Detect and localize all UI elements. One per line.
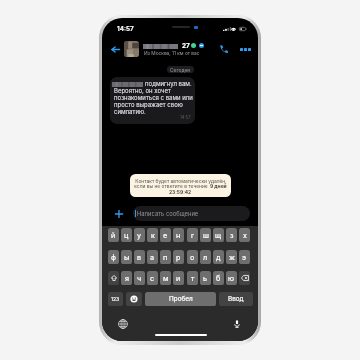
staticText: ш bbox=[203, 231, 209, 240]
button[interactable]: Ввод bbox=[219, 292, 253, 306]
button[interactable]: я bbox=[121, 271, 132, 285]
button[interactable]: и bbox=[173, 271, 184, 285]
button[interactable]: Add attachment bbox=[114, 209, 124, 219]
button[interactable]: р bbox=[173, 250, 184, 264]
staticText: е bbox=[163, 231, 168, 240]
button[interactable]: х bbox=[239, 228, 250, 242]
button[interactable]: г bbox=[187, 228, 198, 242]
button[interactable]: More options bbox=[238, 42, 252, 56]
staticText: 123 bbox=[111, 296, 120, 302]
staticText: э bbox=[242, 253, 247, 262]
button[interactable]: ш bbox=[200, 228, 211, 242]
staticText: ю bbox=[228, 274, 235, 283]
button[interactable]: л bbox=[200, 250, 211, 264]
staticText: Пробел bbox=[169, 295, 193, 303]
staticText: з bbox=[230, 231, 234, 240]
staticText: Контакт будет автоматически удалён, bbox=[135, 178, 227, 184]
button[interactable]: Emoji bbox=[126, 292, 142, 306]
button[interactable]: Shift bbox=[108, 271, 119, 285]
button[interactable]: ж bbox=[226, 250, 237, 264]
button[interactable]: Profile photo bbox=[124, 41, 139, 57]
staticText: ь bbox=[203, 274, 208, 283]
staticText: а bbox=[150, 253, 155, 262]
button[interactable]: н bbox=[173, 228, 184, 242]
staticText: х bbox=[243, 231, 247, 240]
button[interactable]: 123 bbox=[108, 292, 123, 306]
staticText: 14:57 bbox=[180, 115, 191, 120]
button[interactable]: ы bbox=[121, 250, 132, 264]
button[interactable]: Сегодня bbox=[167, 66, 194, 73]
staticText: г bbox=[191, 231, 195, 240]
staticText: Ввод bbox=[228, 295, 244, 303]
button[interactable]: м bbox=[160, 271, 171, 285]
button[interactable]: Call bbox=[217, 42, 231, 56]
button[interactable]: ч bbox=[134, 271, 145, 285]
staticText: если вы не ответите в течение bbox=[134, 183, 210, 189]
staticText: ч bbox=[137, 274, 142, 283]
staticText: Вероятно, он хочет познакомиться с вами … bbox=[114, 87, 193, 115]
staticText: ц bbox=[124, 231, 129, 240]
button[interactable]: Voice input bbox=[232, 319, 242, 329]
staticText: б bbox=[216, 274, 221, 283]
button[interactable]: з bbox=[226, 228, 237, 242]
staticText: щ bbox=[215, 231, 222, 240]
button[interactable]: щ bbox=[213, 228, 224, 242]
staticText: т bbox=[191, 274, 195, 283]
staticText: д bbox=[216, 253, 221, 262]
button[interactable]: с bbox=[147, 271, 158, 285]
staticText: л bbox=[203, 253, 208, 262]
staticText: й bbox=[111, 231, 116, 240]
button[interactable]: д bbox=[213, 250, 224, 264]
staticText: в bbox=[137, 253, 142, 262]
staticText: я bbox=[125, 274, 129, 283]
staticText: к bbox=[151, 231, 155, 240]
staticText: Написать сообщение bbox=[137, 210, 199, 217]
staticText: 14:57 bbox=[117, 25, 134, 33]
button[interactable]: й bbox=[108, 228, 119, 242]
button[interactable]: ц bbox=[121, 228, 132, 242]
button[interactable]: у bbox=[134, 228, 145, 242]
staticText: у bbox=[137, 231, 142, 240]
button[interactable]: б bbox=[213, 271, 224, 285]
staticText: 27 bbox=[182, 42, 190, 50]
button[interactable]: а bbox=[147, 250, 158, 264]
button[interactable]: п bbox=[160, 250, 171, 264]
staticText: и bbox=[176, 274, 181, 283]
button[interactable]: в bbox=[134, 250, 145, 264]
button[interactable]: Backspace bbox=[239, 271, 250, 285]
staticText: Сегодня bbox=[170, 67, 191, 73]
button[interactable]: ю bbox=[226, 271, 237, 285]
staticText: ы bbox=[124, 253, 130, 262]
button[interactable]: е bbox=[160, 228, 171, 242]
staticText: 9 дней bbox=[210, 183, 227, 189]
staticText: ж bbox=[229, 253, 235, 262]
staticText: н bbox=[176, 231, 181, 240]
staticText: о bbox=[190, 253, 195, 262]
button[interactable]: э bbox=[239, 250, 250, 264]
staticText: подмигнул вам. bbox=[145, 80, 192, 87]
staticText: 23:59:42 bbox=[169, 189, 192, 195]
button[interactable]: Back bbox=[108, 42, 122, 56]
button[interactable]: ь bbox=[200, 271, 211, 285]
staticText: Из Москва, 11 км от вас bbox=[144, 50, 200, 56]
staticText: с bbox=[150, 274, 155, 283]
button[interactable]: Написать сообщение bbox=[133, 206, 250, 221]
staticText: р bbox=[176, 253, 181, 262]
staticText: м bbox=[163, 274, 169, 283]
button[interactable]: о bbox=[187, 250, 198, 264]
button[interactable]: к bbox=[147, 228, 158, 242]
staticText: ф bbox=[111, 253, 116, 262]
button[interactable]: т bbox=[187, 271, 198, 285]
button[interactable]: ф bbox=[108, 250, 119, 264]
button[interactable]: Change keyboard bbox=[118, 319, 128, 329]
staticText: п bbox=[163, 253, 168, 262]
button[interactable]: Пробел bbox=[145, 292, 216, 306]
